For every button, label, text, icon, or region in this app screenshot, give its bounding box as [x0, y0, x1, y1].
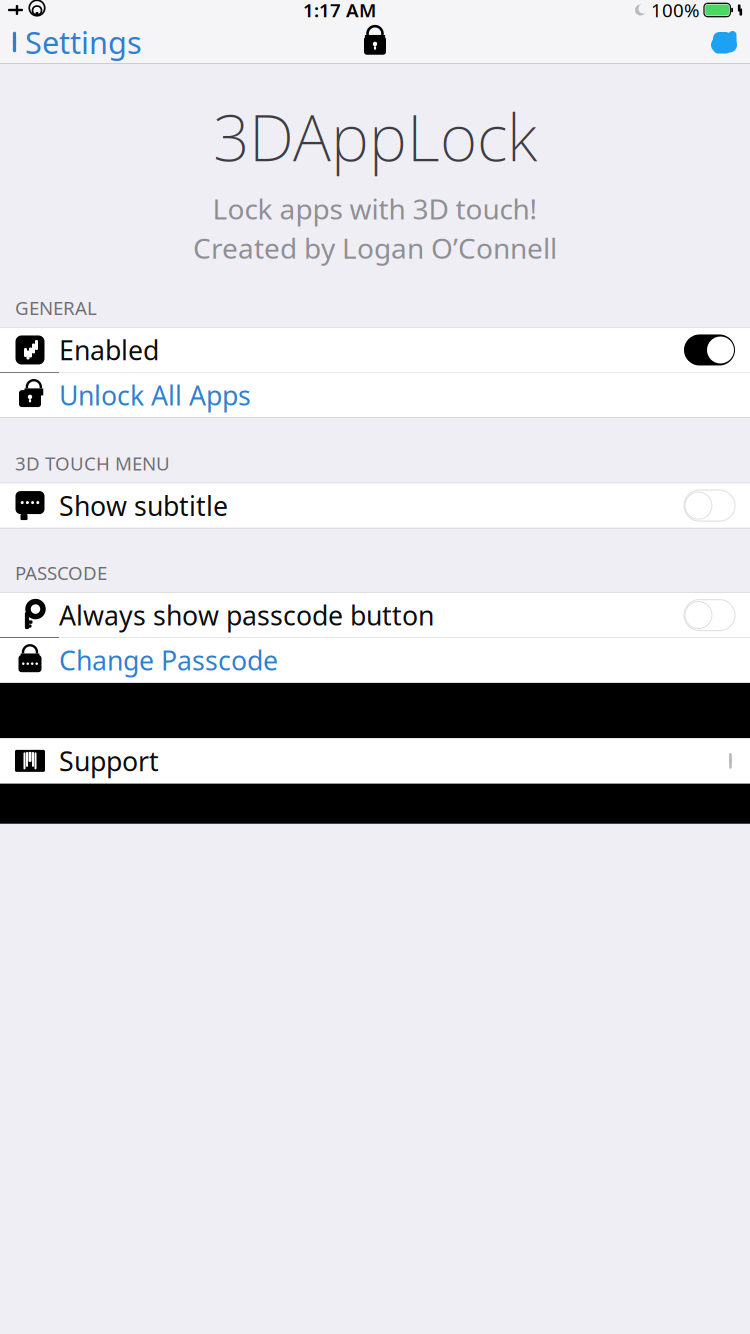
staticText: 3D TOUCH MENU: [15, 451, 170, 476]
button[interactable]: Unlock All Apps: [0, 373, 750, 417]
staticText: Created by Logan O’Connell: [193, 229, 557, 266]
staticText: Change Passcode: [59, 642, 278, 678]
staticText: Unlock All Apps: [59, 377, 251, 413]
staticText: 3DAppLock: [213, 94, 537, 179]
staticText: Settings: [25, 22, 142, 62]
button[interactable]: Change Passcode: [0, 638, 750, 682]
button[interactable]: Off: [684, 600, 735, 631]
staticText: 1:17 AM: [303, 0, 376, 22]
staticText: GENERAL: [15, 295, 97, 320]
button[interactable]: Show subtitle: [0, 483, 750, 528]
button[interactable]: Settings: [0, 16, 142, 68]
staticText: Show subtitle: [59, 488, 228, 523]
button[interactable]: Off: [684, 490, 735, 521]
staticText: 100%: [651, 0, 700, 22]
staticText: Enabled: [59, 332, 159, 368]
staticText: Lock apps with 3D touch!: [212, 190, 537, 227]
staticText: Support: [59, 743, 159, 779]
button[interactable]: Always show passcode button: [0, 593, 750, 637]
button[interactable]: Enabled: [0, 328, 750, 372]
staticText: PASSCODE: [15, 560, 107, 585]
button[interactable]: On: [684, 334, 735, 365]
staticText: Always show passcode button: [59, 597, 434, 633]
button[interactable]: Support: [0, 739, 750, 783]
button[interactable]: Twitter: [698, 22, 750, 62]
